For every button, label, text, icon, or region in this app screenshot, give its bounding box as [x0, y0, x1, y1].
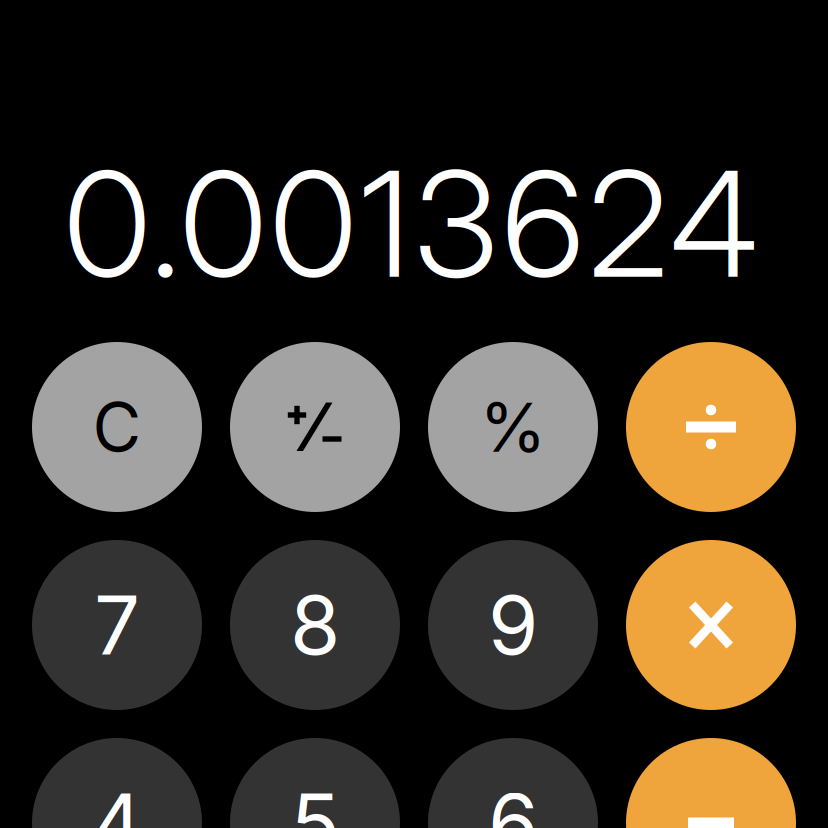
staticText: 7 [94, 576, 140, 674]
staticText: 9 [488, 576, 538, 674]
staticText: % [479, 386, 546, 468]
button[interactable]: Percent [428, 342, 598, 512]
button[interactable]: Eight [230, 540, 400, 710]
button[interactable]: Minus [626, 738, 796, 828]
staticText: C [92, 387, 141, 467]
button[interactable]: Six [428, 738, 598, 828]
staticText: 6 [488, 774, 538, 828]
button[interactable]: Five [230, 738, 400, 828]
button[interactable]: Four [32, 738, 202, 828]
button[interactable]: Seven [32, 540, 202, 710]
button[interactable]: Nine [428, 540, 598, 710]
staticText: 5 [290, 774, 339, 828]
button[interactable]: Clear [32, 342, 202, 512]
staticText: 8 [290, 576, 340, 674]
staticText: 0.0013624 [64, 136, 758, 312]
button[interactable]: Plus minus [230, 342, 400, 512]
staticText: 4 [90, 774, 143, 828]
button[interactable]: Multiply [626, 540, 796, 710]
button[interactable]: Divide [626, 342, 796, 512]
